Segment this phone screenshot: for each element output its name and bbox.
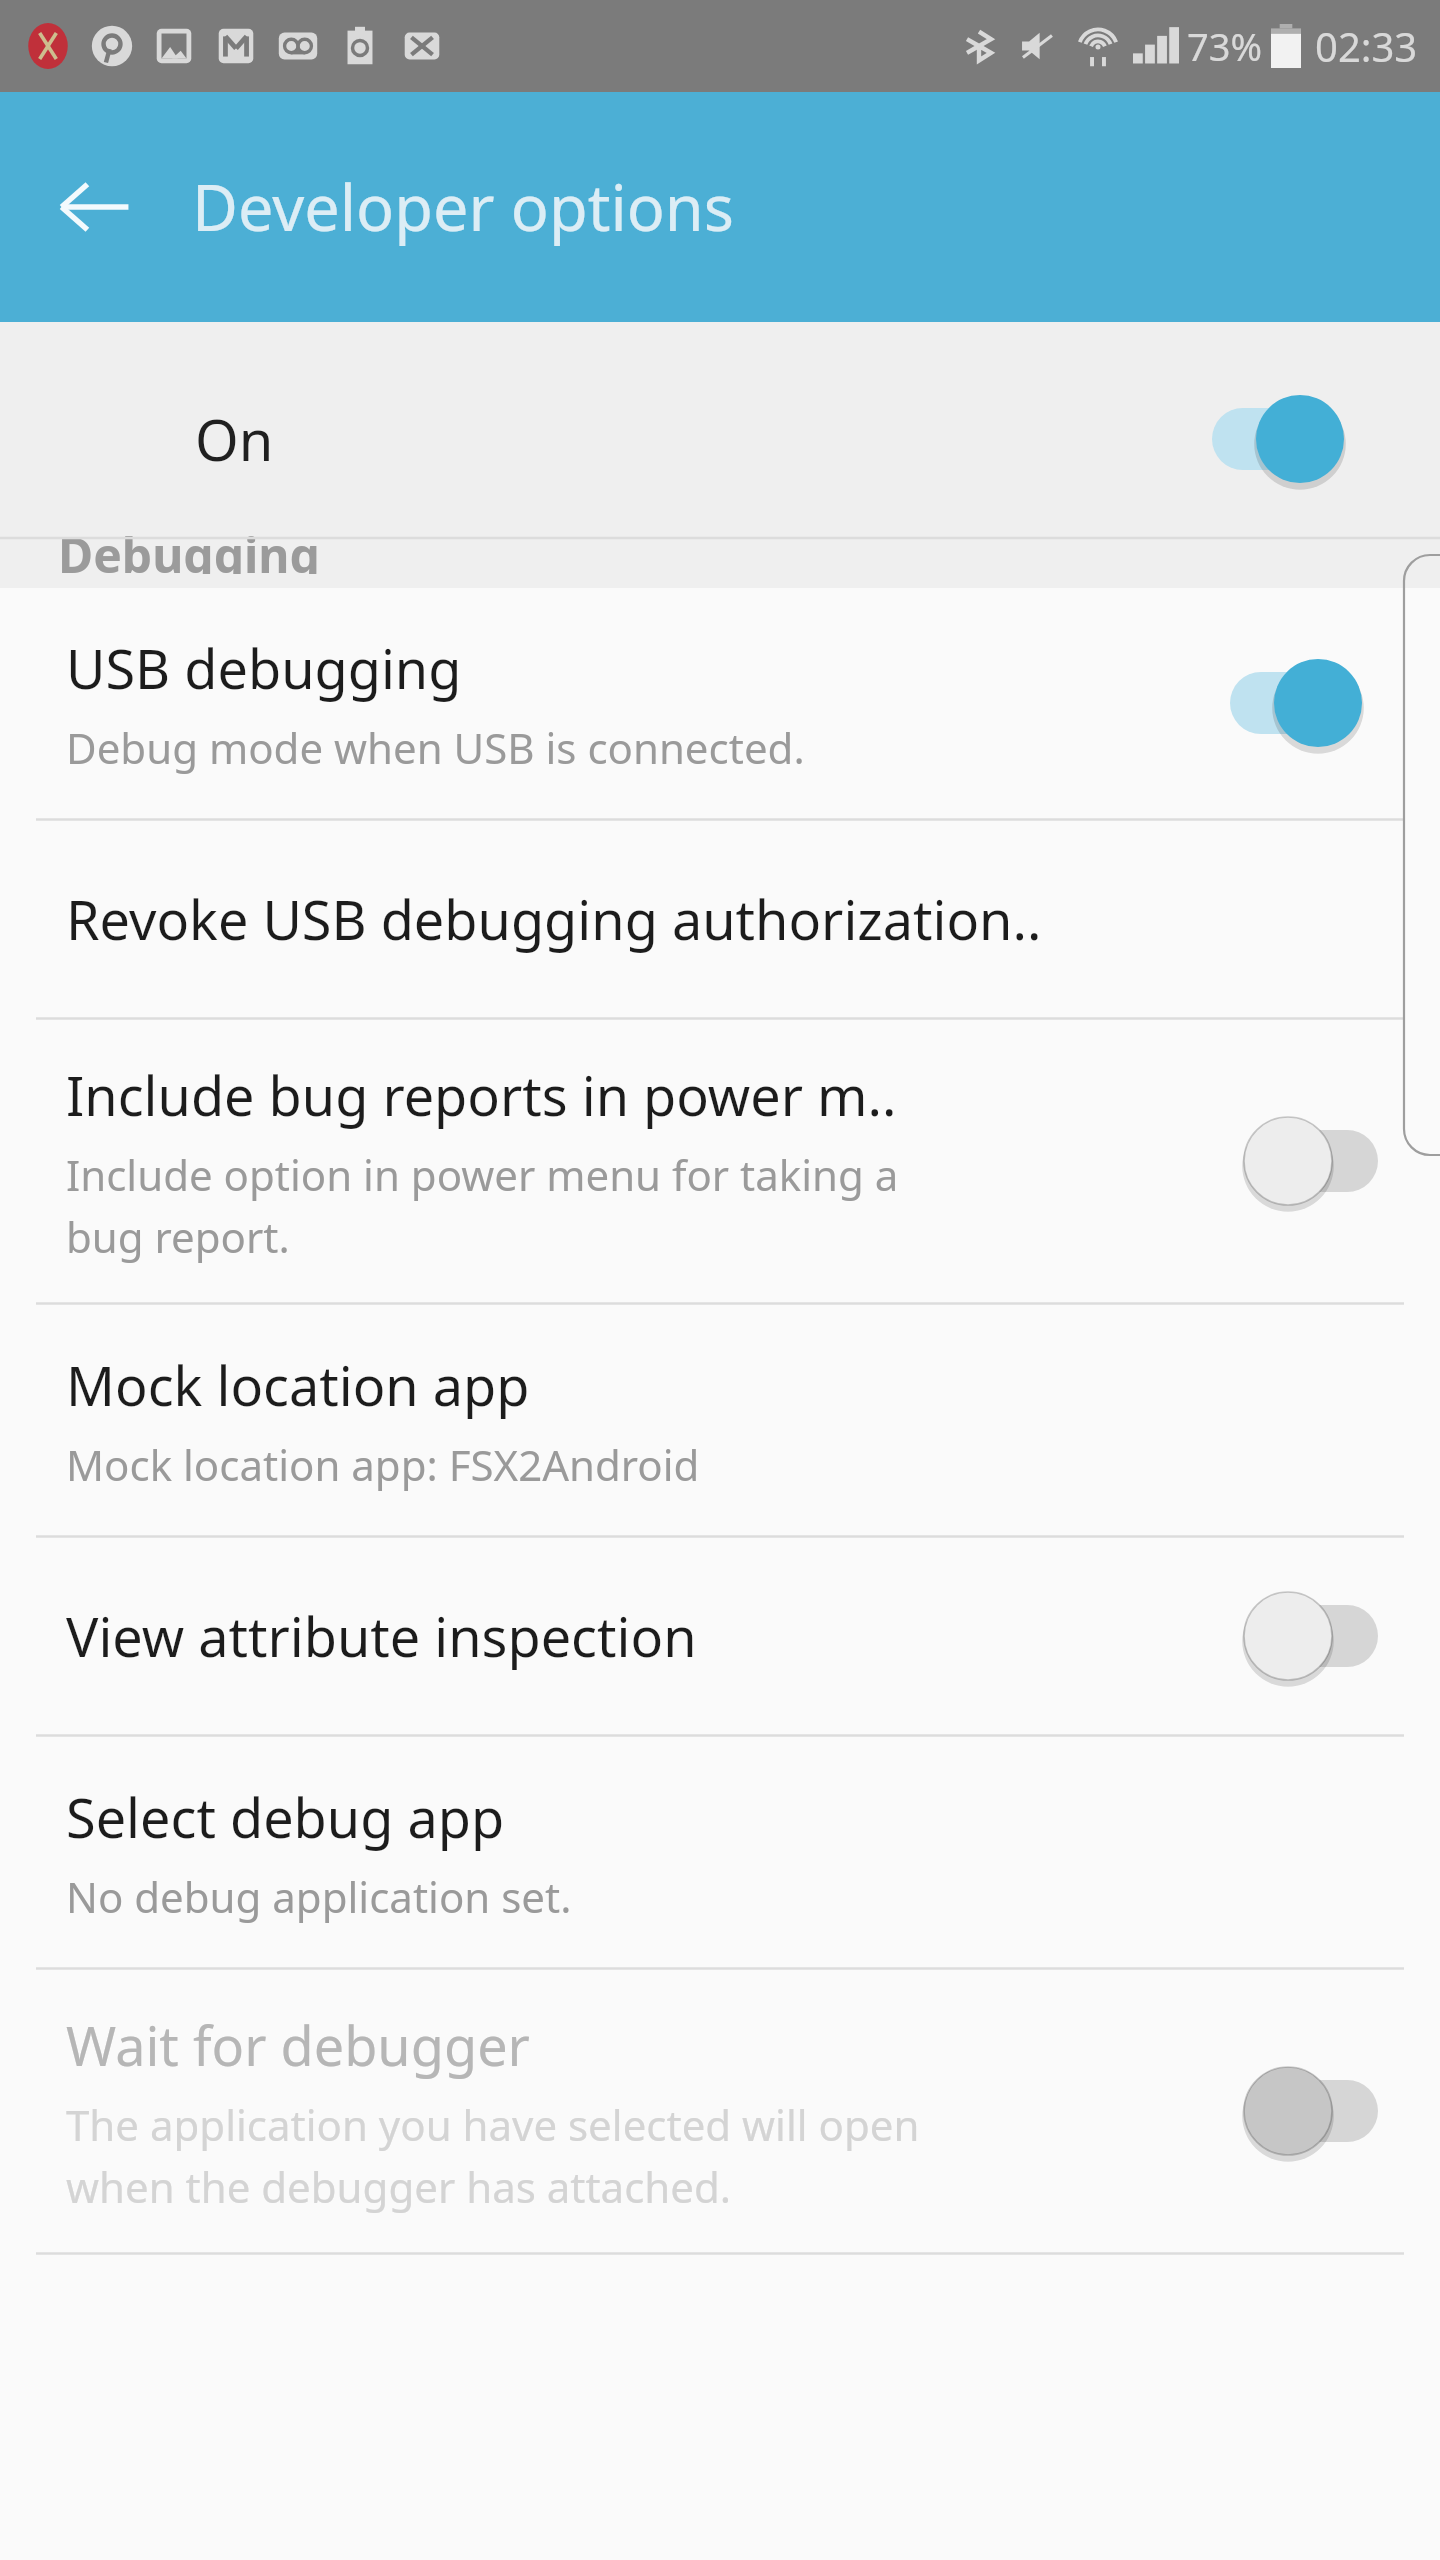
button[interactable]: Toggle, off	[1230, 1582, 1390, 1690]
staticText: Mock location app: FSX2Android	[66, 1436, 700, 1493]
button[interactable]: Toggle, off	[1230, 2057, 1390, 2165]
staticText: Debugging	[58, 536, 320, 574]
staticText: 73%	[1187, 20, 1263, 72]
staticText: Select debug app	[66, 1780, 505, 1854]
button[interactable]: Revoke USB debugging authorization..	[0, 821, 1440, 1017]
button[interactable]: Include bug reports in power m..	[0, 1020, 1440, 1302]
staticText: Include bug reports in power m..	[66, 1058, 897, 1132]
button[interactable]: On	[0, 322, 1440, 588]
button[interactable]: Mock location app	[0, 1305, 1440, 1535]
button[interactable]: Select debug app	[0, 1737, 1440, 1967]
button[interactable]: Wait for debugger	[0, 1970, 1440, 2252]
staticText: Developer options	[192, 164, 734, 250]
staticText: On	[195, 401, 274, 477]
staticText: Include option in power menu for taking …	[66, 1146, 899, 1265]
staticText: USB debugging	[66, 631, 462, 705]
staticText: 02:33	[1315, 19, 1418, 73]
button[interactable]: Toggle, on	[1212, 385, 1372, 493]
button[interactable]: View attribute inspection	[0, 1538, 1440, 1734]
staticText: The application you have selected will o…	[66, 2096, 920, 2215]
button[interactable]: Toggle, on	[1230, 649, 1390, 757]
staticText: Debug mode when USB is connected.	[66, 719, 805, 776]
staticText: No debug application set.	[66, 1868, 572, 1925]
button[interactable]: Toggle, off	[1230, 1107, 1390, 1215]
button[interactable]: Navigate up	[40, 152, 150, 262]
staticText: Mock location app	[66, 1348, 530, 1422]
staticText: Revoke USB debugging authorization..	[66, 882, 1042, 956]
staticText: Wait for debugger	[66, 2008, 530, 2082]
staticText: View attribute inspection	[66, 1599, 697, 1673]
button[interactable]: USB debugging	[0, 588, 1440, 818]
